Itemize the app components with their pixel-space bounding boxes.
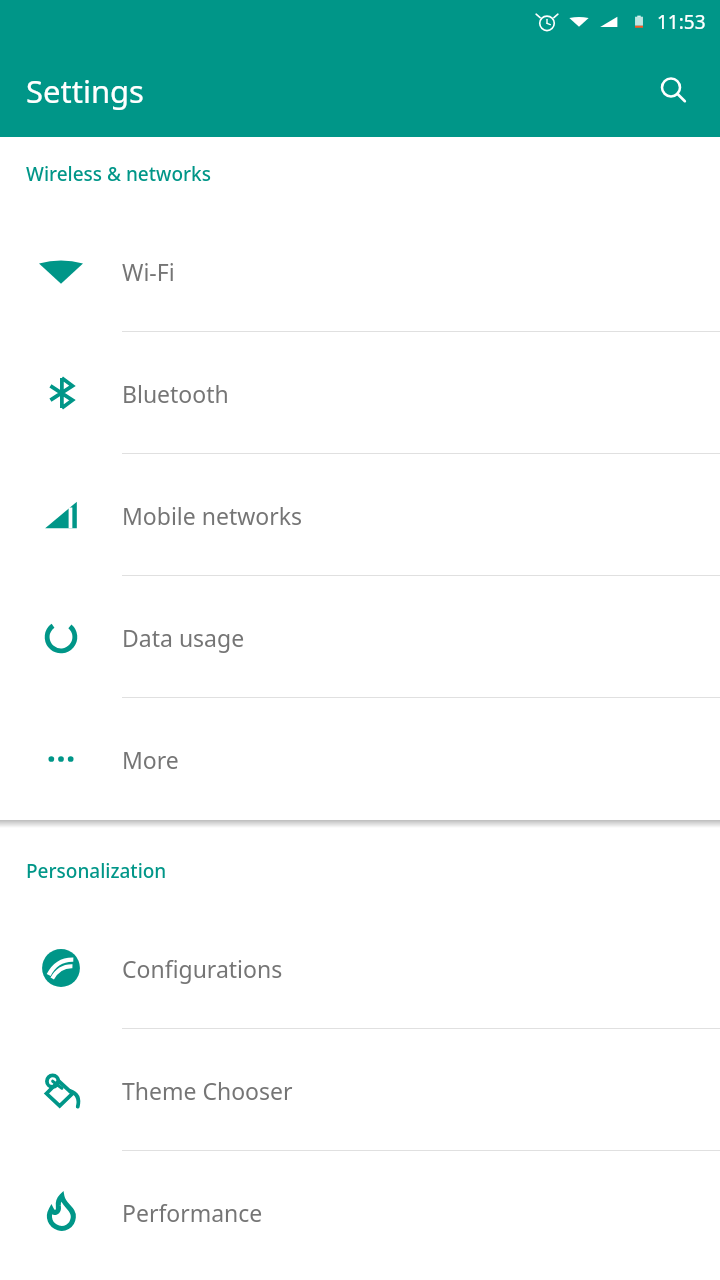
button[interactable]: Data usage (0, 576, 720, 698)
button[interactable]: Performance (0, 1151, 720, 1273)
staticText: Mobile networks (122, 500, 303, 531)
staticText: More (122, 744, 179, 775)
staticText: Wi-Fi (122, 256, 175, 287)
staticText: Performance (122, 1197, 263, 1228)
staticText: Personalization (26, 858, 167, 884)
button[interactable]: Configurations (0, 907, 720, 1029)
button[interactable]: Mobile networks (0, 454, 720, 576)
button[interactable]: Theme Chooser (0, 1029, 720, 1151)
staticText: Configurations (122, 953, 283, 984)
button[interactable]: Search (650, 67, 698, 115)
staticText: 11:53 (657, 9, 706, 35)
staticText: Bluetooth (122, 378, 229, 409)
button[interactable]: More (0, 698, 720, 820)
staticText: Settings (26, 70, 144, 112)
staticText: Wireless & networks (26, 161, 211, 187)
button[interactable]: Bluetooth (0, 332, 720, 454)
staticText: Data usage (122, 622, 245, 653)
button[interactable]: Wi-Fi (0, 210, 720, 332)
staticText: Theme Chooser (122, 1075, 293, 1106)
